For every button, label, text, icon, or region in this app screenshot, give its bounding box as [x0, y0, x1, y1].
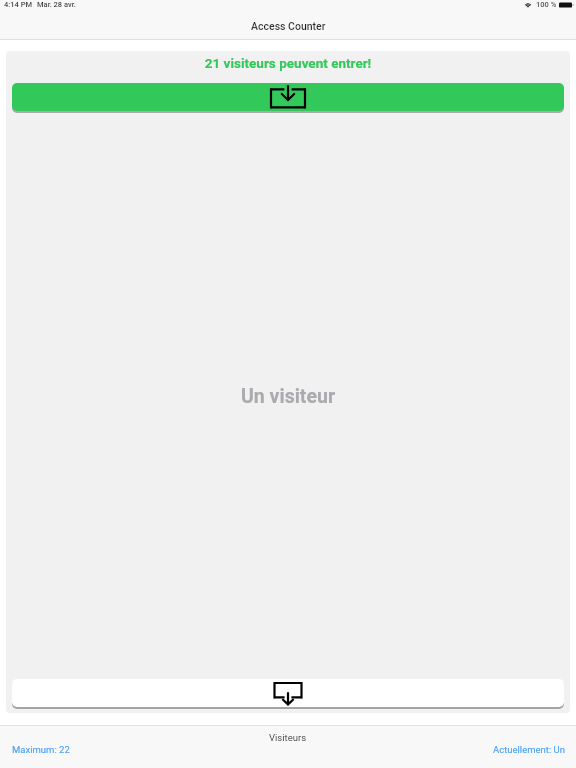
- staticText: Un visiteur: [241, 385, 336, 408]
- staticText: Mar. 28 avr.: [37, 0, 76, 9]
- staticText: 21 visiteurs peuvent entrer!: [6, 55, 570, 71]
- staticText: 100 %: [536, 0, 557, 9]
- other: Entrer: [268, 85, 308, 109]
- button[interactable]: Sortie d'un visiteur: [12, 679, 564, 707]
- other: Sortir: [268, 681, 308, 705]
- button[interactable]: Entrée d'un visiteur: [12, 83, 564, 111]
- staticText: 4:14 PM: [4, 0, 33, 9]
- staticText: Access Counter: [251, 20, 326, 32]
- button[interactable]: Maximum: 22: [12, 744, 70, 755]
- staticText: Visiteurs: [269, 732, 307, 743]
- button[interactable]: Actuellement: Un: [493, 744, 565, 755]
